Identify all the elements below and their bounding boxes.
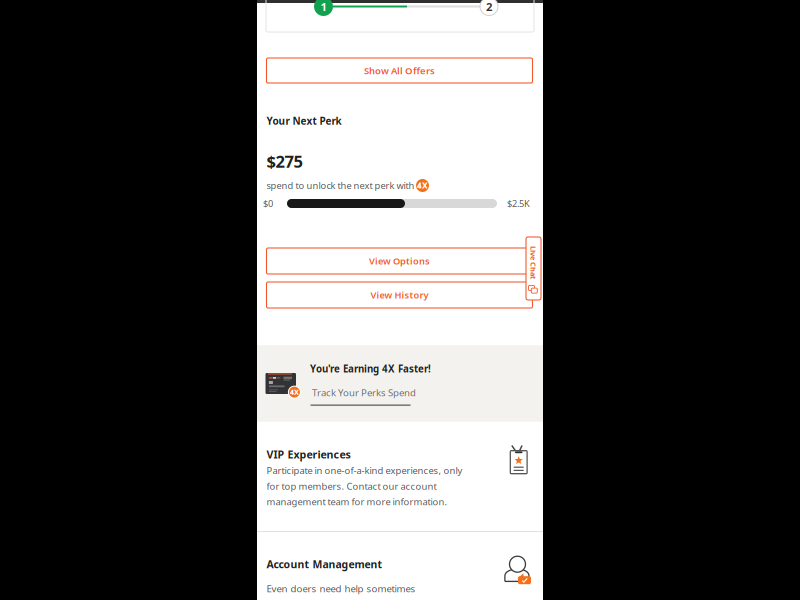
staticText: Even doers need help sometimes xyxy=(266,582,415,595)
button[interactable]: Account Management xyxy=(257,532,543,600)
staticText: 4X xyxy=(417,180,428,191)
staticText: 2 xyxy=(486,0,492,14)
staticText: Live Chat xyxy=(517,257,550,268)
staticText: View Options xyxy=(369,255,430,267)
staticText: Track Your Perks Spend xyxy=(312,386,416,399)
staticText: You're Earning 4X Faster! xyxy=(310,362,431,375)
staticText: VIP Experiences xyxy=(266,447,350,461)
staticText: Your Next Perk xyxy=(266,114,341,128)
staticText: $275 xyxy=(266,150,302,173)
button[interactable]: View History xyxy=(266,282,532,308)
staticText: 1 xyxy=(320,0,326,14)
button[interactable]: VIP Experiences xyxy=(257,422,543,531)
staticText: Participate in one-of-a-kind experiences… xyxy=(266,464,462,508)
staticText: Account Management xyxy=(266,557,382,571)
button[interactable]: View Options xyxy=(266,248,532,274)
staticText: spend to unlock the next perk with xyxy=(266,179,414,192)
staticText: Show All Offers xyxy=(364,64,435,77)
staticText: 4X xyxy=(290,387,299,397)
staticText: $2.5K xyxy=(507,197,530,210)
staticText: $0 xyxy=(263,197,273,210)
button[interactable]: Show All Offers xyxy=(266,58,532,83)
button[interactable]: 4X xyxy=(257,345,543,421)
staticText: View History xyxy=(370,289,428,301)
button[interactable]: Live Chat xyxy=(526,237,541,300)
